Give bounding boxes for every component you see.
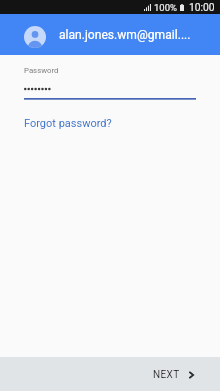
button[interactable]: NEXT [137,362,220,387]
staticText: Password [24,66,59,75]
other: Battery full [180,4,184,11]
staticText: Forgot password? [24,117,112,130]
staticText: 10:00 [189,1,215,13]
other: Account avatar [24,26,46,48]
staticText: 100% [154,2,177,13]
other: Mobile signal [144,4,151,11]
button[interactable]: Forgot password? [24,117,112,130]
button[interactable]: Account avatar [0,14,220,55]
staticText: alan.jones.wm@gmail.... [59,28,191,42]
staticText: NEXT [153,369,180,381]
